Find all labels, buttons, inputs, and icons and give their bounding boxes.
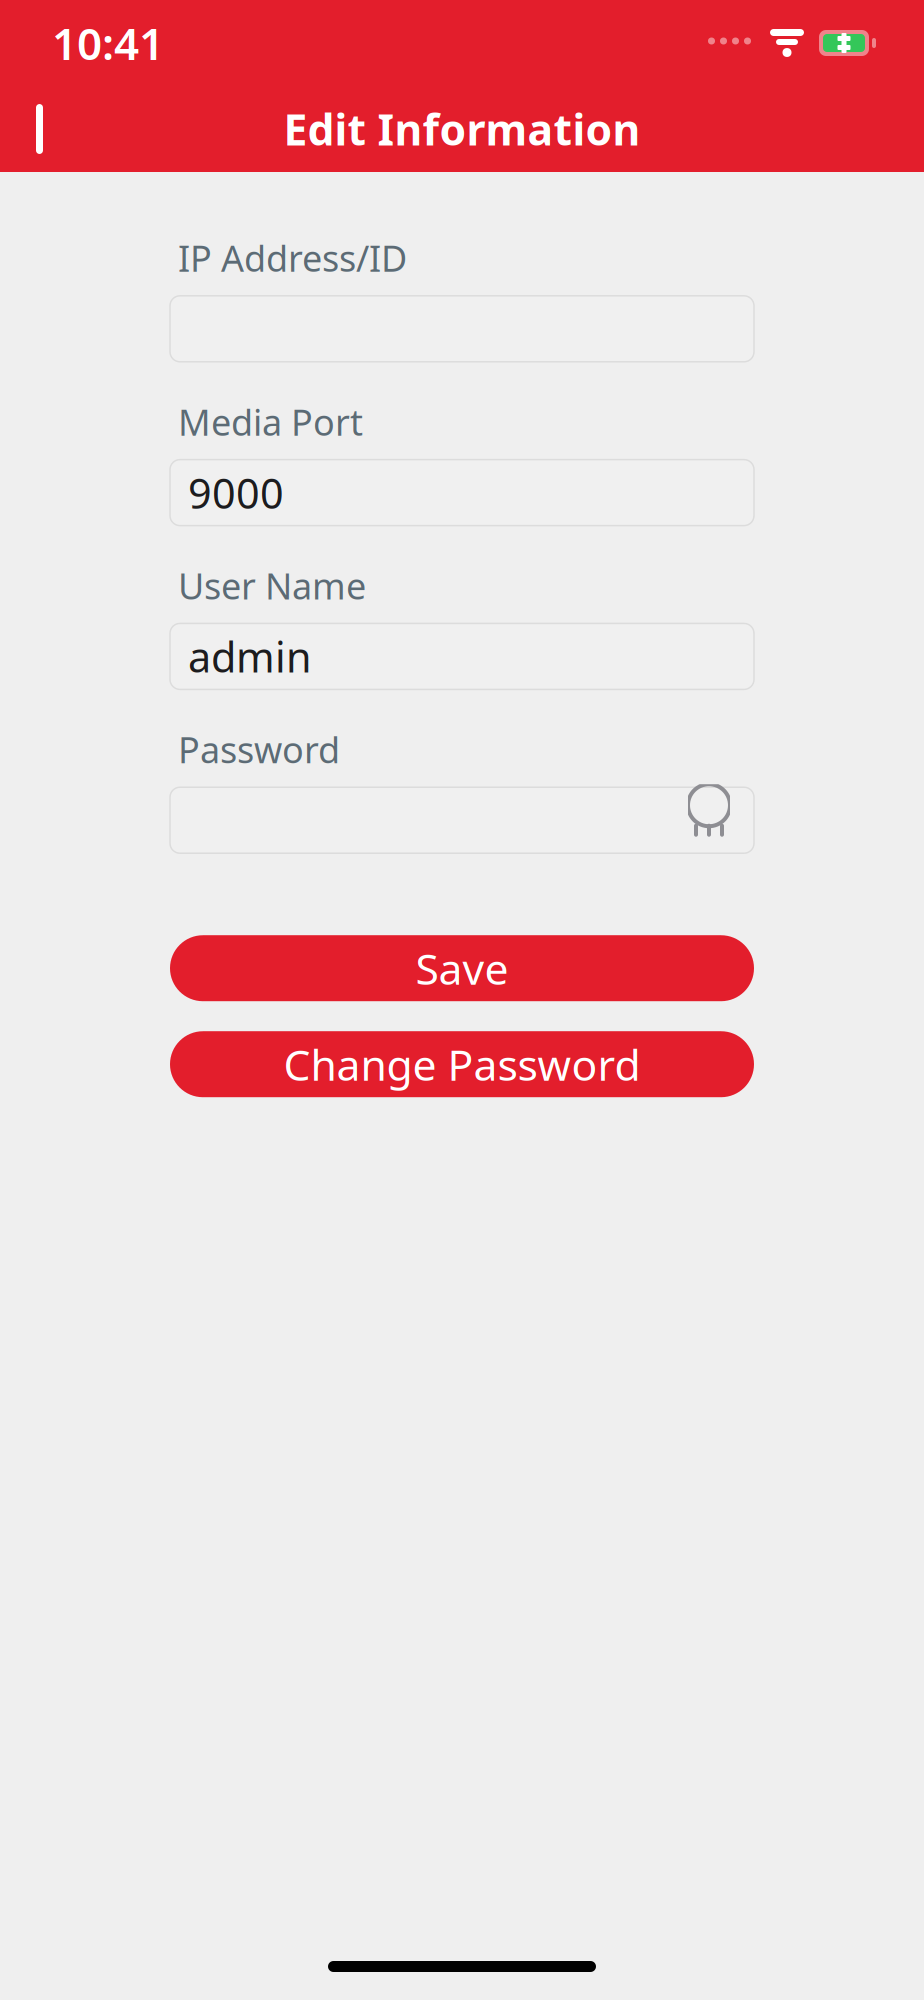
button[interactable]: Save bbox=[170, 935, 754, 1001]
staticText: Save bbox=[415, 940, 508, 997]
staticText: 9000 bbox=[188, 465, 284, 520]
button[interactable] bbox=[170, 787, 754, 853]
button[interactable]: Back bbox=[6, 91, 82, 167]
staticText: Change Password bbox=[283, 1036, 640, 1093]
staticText: Password bbox=[178, 725, 340, 773]
staticText: Media Port bbox=[178, 398, 363, 446]
button[interactable]: admin bbox=[170, 623, 754, 689]
button[interactable]: Change Password bbox=[170, 1031, 754, 1097]
staticText: User Name bbox=[178, 562, 366, 609]
staticText: admin bbox=[188, 629, 312, 684]
staticText: Edit Information bbox=[283, 101, 640, 157]
staticText: 10:41 bbox=[52, 14, 164, 72]
staticText: IP Address/ID bbox=[178, 234, 407, 282]
button[interactable]: 9000 bbox=[170, 460, 754, 526]
